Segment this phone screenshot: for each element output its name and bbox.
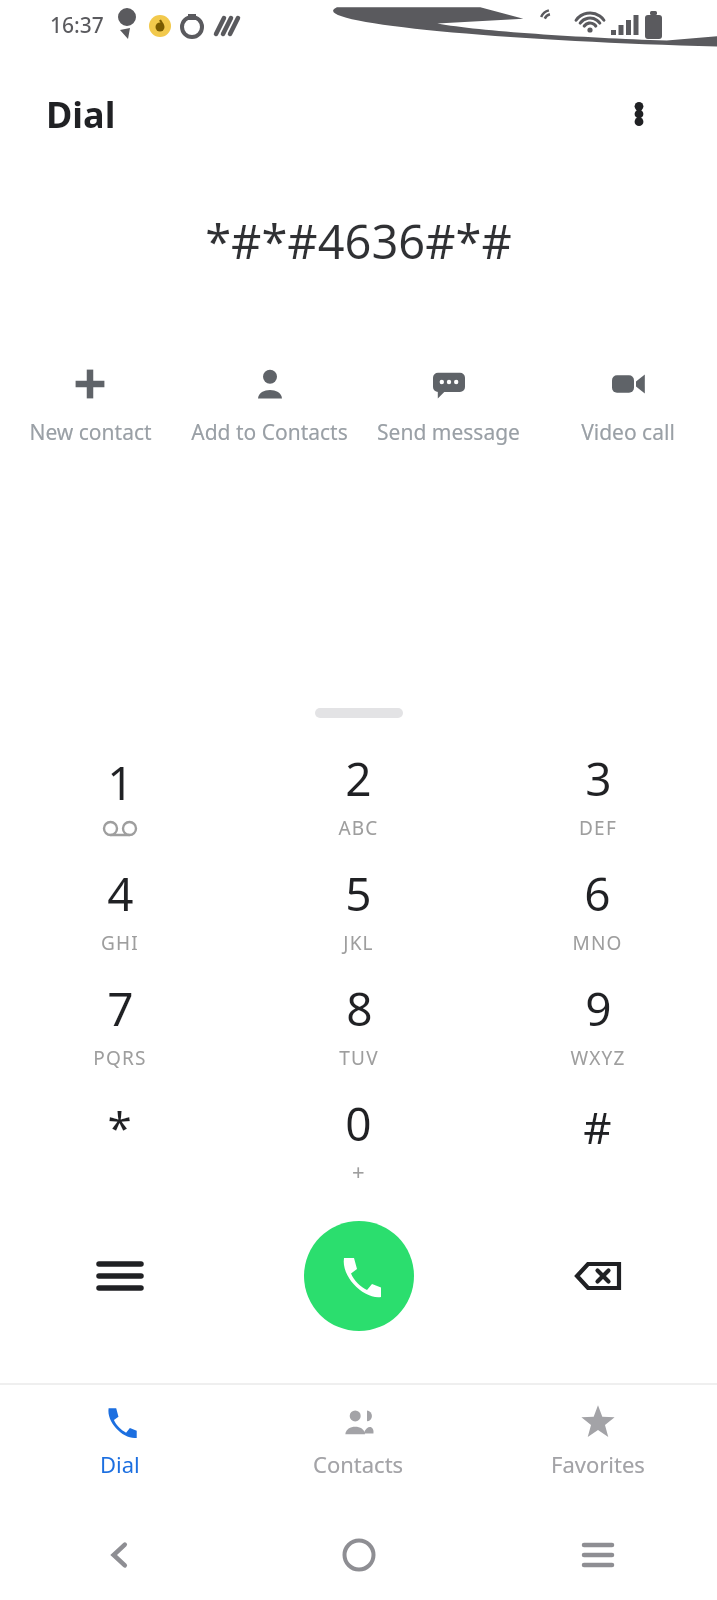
button[interactable]: Contacts	[239, 1385, 478, 1500]
button[interactable]: New contact	[0, 356, 180, 456]
staticText: Video call	[581, 418, 675, 447]
staticText: PQRS	[93, 1045, 147, 1071]
button[interactable]: 3	[478, 736, 717, 851]
button[interactable]: *	[0, 1081, 239, 1196]
staticText: Send message	[377, 418, 520, 447]
staticText: 1	[107, 751, 134, 814]
staticText: Favorites	[551, 1449, 645, 1479]
button[interactable]: Backspace	[478, 1196, 717, 1356]
button[interactable]: Recent apps	[478, 1510, 717, 1600]
button[interactable]: 5	[239, 851, 478, 966]
staticText: 16:37	[50, 11, 104, 40]
staticText: 9	[585, 977, 612, 1040]
staticText: DEF	[579, 815, 617, 841]
staticText: Dial	[46, 90, 116, 139]
button[interactable]: Call	[304, 1221, 414, 1331]
staticText: 2	[345, 747, 372, 810]
staticText: JKL	[343, 930, 374, 956]
staticText: 4	[107, 862, 134, 925]
staticText: New contact	[29, 418, 152, 447]
staticText: MNO	[572, 930, 623, 956]
button[interactable]: 4	[0, 851, 239, 966]
staticText: GHI	[101, 930, 139, 956]
button[interactable]: 7	[0, 966, 239, 1081]
button[interactable]: Back	[0, 1510, 239, 1600]
staticText: 0	[345, 1092, 372, 1155]
button[interactable]: 9	[478, 966, 717, 1081]
staticText: +	[352, 1156, 366, 1186]
staticText: ABC	[338, 815, 379, 841]
staticText: TUV	[339, 1045, 379, 1071]
button[interactable]: Favorites	[478, 1385, 717, 1500]
staticText: #	[583, 1097, 612, 1157]
button[interactable]: 8	[239, 966, 478, 1081]
button[interactable]: Home	[239, 1510, 478, 1600]
staticText: 7	[107, 977, 134, 1040]
staticText: 6	[584, 862, 611, 925]
staticText: Contacts	[313, 1449, 404, 1479]
button[interactable]: Send message	[359, 356, 538, 456]
button[interactable]: Dial	[0, 1385, 239, 1500]
staticText: WXYZ	[570, 1045, 626, 1071]
staticText: Dial	[100, 1449, 140, 1479]
button[interactable]: 1	[0, 736, 239, 851]
button[interactable]: Dialpad options	[0, 1196, 239, 1356]
button[interactable]: #	[478, 1081, 717, 1196]
staticText: *	[107, 1097, 132, 1157]
button[interactable]: Add to Contacts	[180, 356, 359, 456]
button[interactable]: 6	[478, 851, 717, 966]
staticText: 5	[345, 862, 372, 925]
staticText: 8	[346, 977, 373, 1040]
button[interactable]: Video call	[538, 356, 717, 456]
button[interactable]: 2	[239, 736, 478, 851]
staticText: 3	[585, 747, 612, 810]
staticText: Add to Contacts	[191, 418, 348, 447]
button[interactable]: More options	[611, 86, 667, 142]
button[interactable]: 0	[239, 1081, 478, 1196]
staticText: *#*#4636#*#	[205, 209, 512, 273]
